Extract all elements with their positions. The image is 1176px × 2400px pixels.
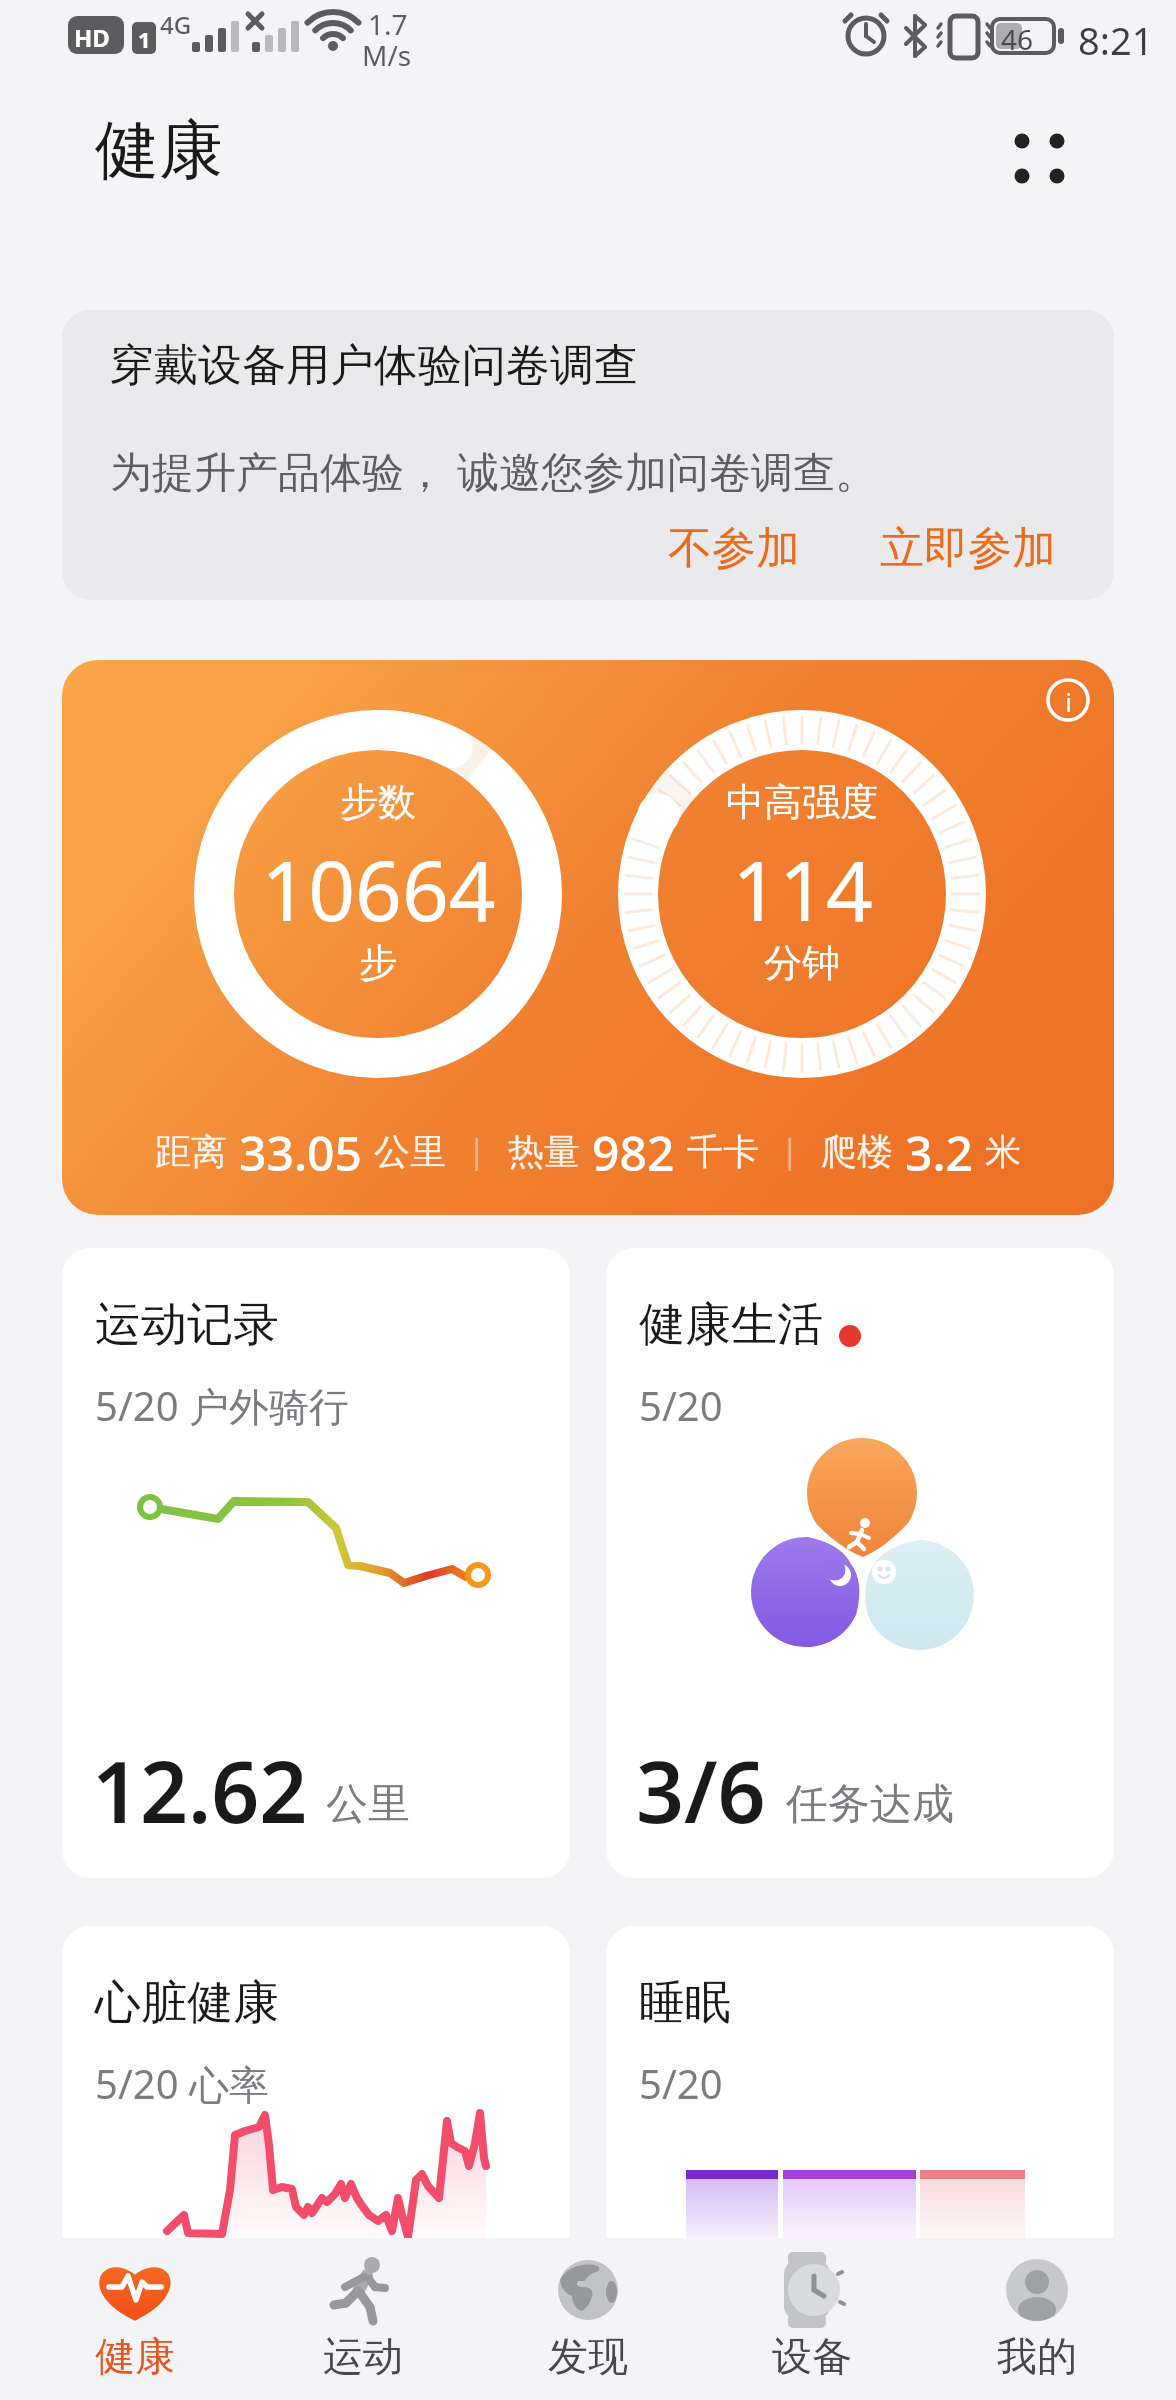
button[interactable] xyxy=(1005,125,1080,195)
staticText: 发现 xyxy=(548,2331,628,2381)
staticText: 运动记录 xyxy=(95,1296,279,1354)
button[interactable]: 设备 xyxy=(737,2238,887,2400)
staticText: 46 xyxy=(1001,20,1034,58)
button[interactable]: 睡眠 xyxy=(606,1926,1114,2238)
staticText: 穿戴设备用户体验问卷调查 xyxy=(110,338,638,393)
staticText: 5/20 户外骑行 xyxy=(95,1378,349,1433)
staticText: | xyxy=(468,1129,486,1173)
staticText: 1.7 xyxy=(368,5,408,43)
staticText: 3/6 xyxy=(636,1733,766,1847)
staticText: i xyxy=(1065,684,1072,719)
button[interactable]: 不参加 xyxy=(660,513,808,584)
staticText: 心脏健康 xyxy=(95,1974,279,2032)
staticText: 步数 xyxy=(340,778,416,826)
staticText: 睡眠 xyxy=(639,1974,731,2032)
staticText: 114 xyxy=(732,833,873,933)
button[interactable]: 立即参加 xyxy=(872,513,1064,584)
staticText: 33.05 xyxy=(239,1120,362,1182)
staticText: 982 xyxy=(592,1120,675,1182)
staticText: 10664 xyxy=(261,833,496,933)
staticText: 任务达成 xyxy=(786,1778,954,1831)
staticText: 12.62 xyxy=(92,1733,308,1847)
staticText: 5/20 xyxy=(639,1378,723,1432)
button[interactable]: 心脏健康 xyxy=(62,1926,570,2238)
staticText: 4G xyxy=(160,8,192,41)
staticText: 3.2 xyxy=(905,1120,973,1182)
staticText: 爬楼 xyxy=(821,1129,893,1174)
button[interactable]: 健康生活 xyxy=(606,1248,1114,1878)
staticText: 为提升产品体验， 诚邀您参加问卷调查。 xyxy=(110,442,877,499)
staticText: 设备 xyxy=(772,2331,852,2381)
staticText: M/s xyxy=(362,36,412,74)
button[interactable]: 我的 xyxy=(962,2238,1112,2400)
staticText: 健康 xyxy=(95,110,223,191)
staticText: 5/20 心率 xyxy=(95,2056,269,2111)
staticText: 立即参加 xyxy=(880,521,1056,576)
button[interactable]: 发现 xyxy=(513,2238,663,2400)
button[interactable]: 步数 xyxy=(62,660,1114,1215)
button[interactable]: 运动 xyxy=(288,2238,438,2400)
staticText: 步 xyxy=(359,939,397,987)
staticText: 运动 xyxy=(323,2331,403,2381)
staticText: 5/20 xyxy=(639,2056,723,2110)
staticText: HD xyxy=(74,21,110,54)
staticText: 热量 xyxy=(508,1129,580,1174)
staticText: 分钟 xyxy=(764,939,840,987)
staticText: 1 xyxy=(138,24,151,54)
staticText: 千卡 xyxy=(687,1129,759,1174)
staticText: 健康生活 xyxy=(639,1296,823,1354)
staticText: 米 xyxy=(985,1129,1021,1174)
button[interactable]: 健康 xyxy=(60,2238,210,2400)
staticText: 8:21 xyxy=(1078,14,1154,66)
staticText: 公里 xyxy=(326,1778,410,1831)
staticText: 健康 xyxy=(95,2331,175,2381)
staticText: 距离 xyxy=(155,1129,227,1174)
staticText: 不参加 xyxy=(668,521,800,576)
staticText: 我的 xyxy=(997,2331,1077,2381)
staticText: 公里 xyxy=(374,1129,446,1174)
staticText: | xyxy=(781,1129,799,1173)
staticText: 中高强度 xyxy=(726,778,878,826)
button[interactable]: 运动记录 xyxy=(62,1248,570,1878)
